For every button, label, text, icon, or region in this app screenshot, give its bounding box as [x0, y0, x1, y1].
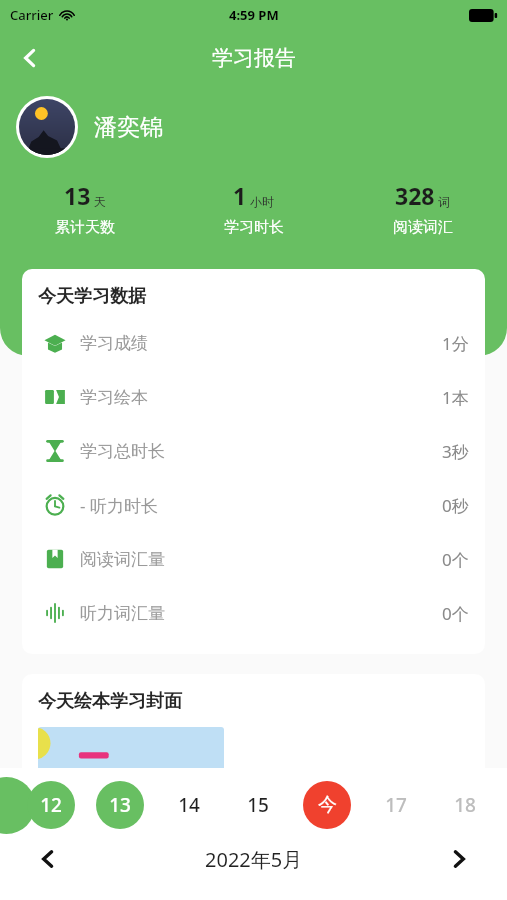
staticText: 0个 [442, 602, 469, 625]
button[interactable]: - 听力时长 [22, 478, 485, 532]
staticText: 学习总时长 [80, 441, 165, 462]
staticText: 今天学习数据 [38, 285, 146, 308]
staticText: 学习报告 [212, 45, 296, 71]
button[interactable]: 13 [96, 781, 144, 829]
staticText: 2022年5月 [205, 846, 303, 873]
staticText: Carrier [10, 6, 54, 24]
staticText: 0个 [442, 548, 469, 571]
staticText: 阅读词汇 [393, 218, 453, 237]
staticText: 12 [40, 792, 62, 818]
staticText: 15 [247, 792, 269, 818]
staticText: 1 [233, 180, 247, 211]
staticText: 学习绘本 [80, 387, 148, 408]
button[interactable]: 328 [338, 180, 507, 237]
button[interactable]: 学习总时长 [22, 424, 485, 478]
button[interactable]: 17 [372, 781, 420, 829]
staticText: 听力词汇量 [80, 603, 165, 624]
staticText: 0秒 [442, 494, 469, 517]
button[interactable]: 13 [0, 180, 169, 237]
button[interactable]: Avatar [19, 99, 75, 155]
staticText: 词 [438, 194, 450, 209]
staticText: 1本 [442, 386, 469, 409]
staticText: 潘奕锦 [94, 113, 163, 142]
staticText: 14 [178, 792, 200, 818]
staticText: 累计天数 [55, 218, 115, 237]
staticText: 今 [318, 793, 337, 817]
button[interactable]: 14 [165, 781, 213, 829]
button[interactable]: 12 [27, 781, 75, 829]
staticText: 13 [109, 792, 131, 818]
staticText: 18 [454, 792, 476, 818]
button[interactable]: 学习成绩 [22, 316, 485, 370]
staticText: 3秒 [442, 440, 469, 463]
button[interactable]: Previous month [28, 839, 68, 879]
staticText: 4:59 PM [229, 6, 279, 24]
staticText: 今天绘本学习封面 [38, 690, 182, 713]
button[interactable]: 听力词汇量 [22, 586, 485, 640]
staticText: 17 [385, 792, 407, 818]
staticText: 13 [64, 180, 91, 211]
button[interactable]: Next month [439, 839, 479, 879]
button[interactable]: 学习绘本 [22, 370, 485, 424]
staticText: 天 [94, 194, 106, 209]
staticText: 阅读词汇量 [80, 549, 165, 570]
button[interactable]: 18 [441, 781, 489, 829]
button[interactable]: 15 [234, 781, 282, 829]
button[interactable]: 今 [303, 781, 351, 829]
staticText: 328 [395, 180, 435, 211]
button[interactable]: 1 [169, 180, 338, 237]
button[interactable]: Back [6, 34, 54, 82]
staticText: 小时 [250, 194, 274, 209]
button[interactable]: 阅读词汇量 [22, 532, 485, 586]
staticText: 1分 [442, 332, 469, 355]
button[interactable] [38, 727, 224, 817]
staticText: 学习成绩 [80, 333, 148, 354]
staticText: - 听力时长 [80, 494, 158, 517]
staticText: 学习时长 [224, 218, 284, 237]
